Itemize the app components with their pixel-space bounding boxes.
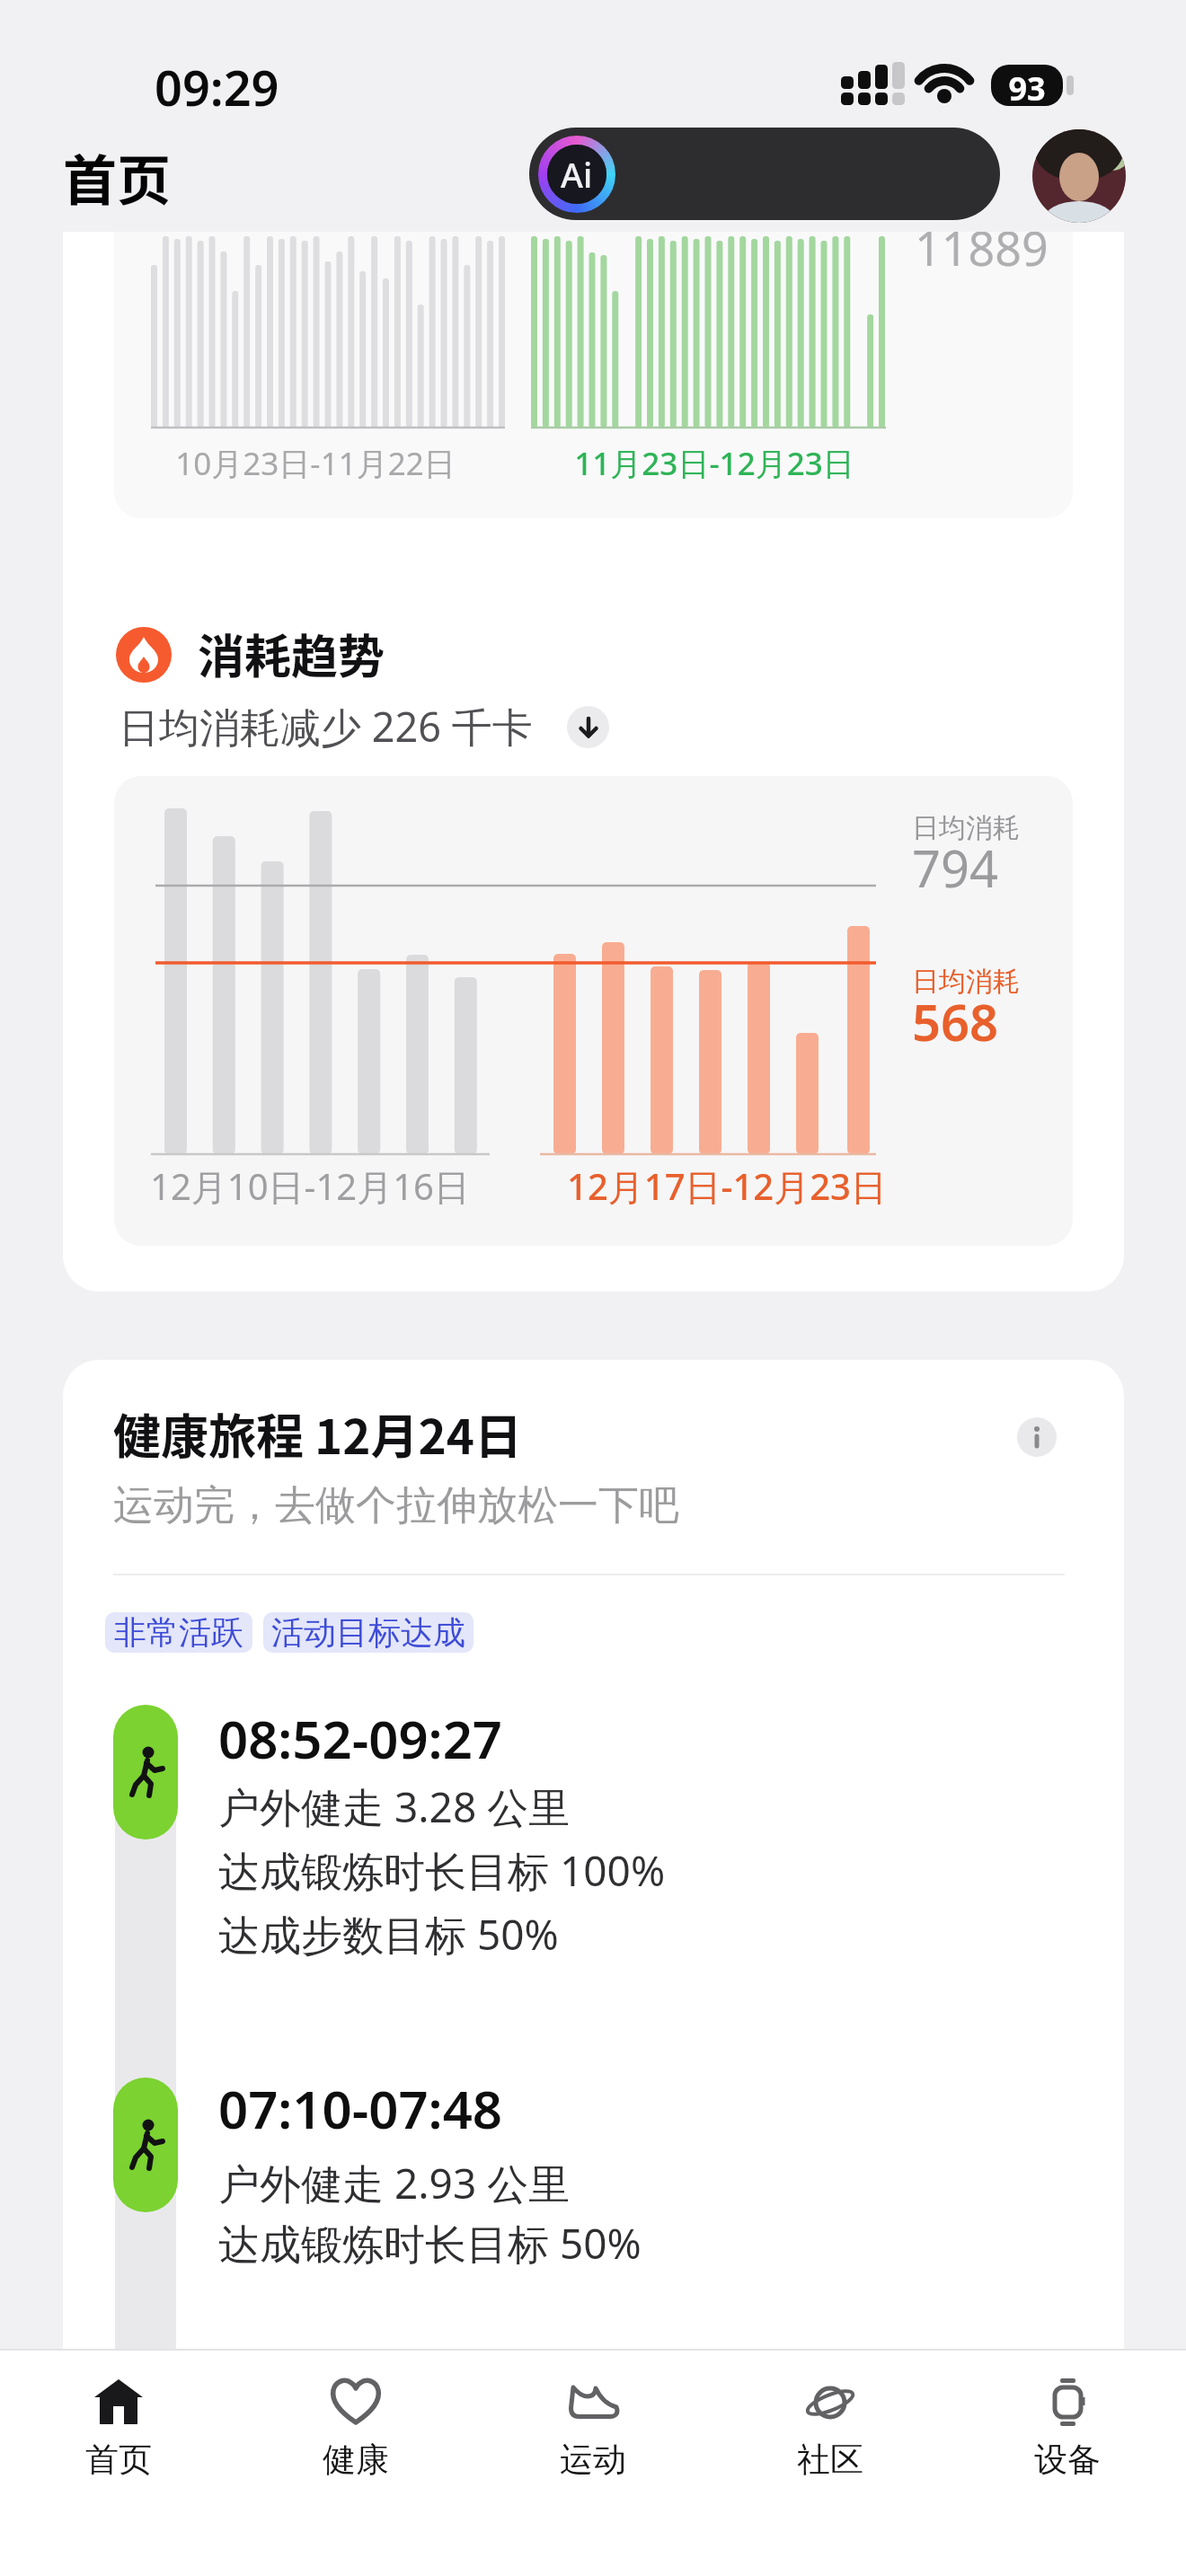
button[interactable] (1017, 1417, 1057, 1457)
button[interactable] (63, 1360, 1124, 2349)
staticText: 日均消耗减少 226 千卡 (119, 699, 533, 754)
staticText: 运动完，去做个拉伸放松一下吧 (113, 1480, 679, 1531)
staticText: 08:52-09:27 (218, 1703, 502, 1774)
button[interactable] (113, 1705, 178, 1839)
button[interactable] (113, 2078, 178, 2212)
staticText: 达成锻炼时长目标 50% (218, 2215, 642, 2272)
staticText: 07:10-07:48 (218, 2073, 502, 2144)
staticText: 11月23日-12月23日 (539, 442, 889, 485)
staticText: 794 (912, 834, 999, 902)
staticText: 户外健走 3.28 公里 (218, 1778, 571, 1835)
staticText: 非常活跃 (114, 1612, 243, 1653)
staticText: 首页 (85, 2439, 152, 2481)
staticText: 日均消耗 (912, 811, 1020, 845)
staticText: 户外健走 2.93 公里 (218, 2155, 571, 2211)
staticText: Ai (561, 151, 593, 198)
button[interactable]: 健康 (237, 2349, 474, 2576)
staticText: 12月17日-12月23日 (552, 1161, 902, 1211)
staticText: 568 (912, 987, 999, 1055)
button[interactable] (567, 706, 609, 748)
staticText: 11889 (915, 216, 1049, 279)
staticText: 12月10日-12月16日 (144, 1161, 476, 1211)
staticText: 93 (991, 66, 1063, 110)
button[interactable]: 社区 (712, 2349, 949, 2576)
staticText: 10月23日-11月22日 (149, 442, 482, 485)
button[interactable]: 设备 (949, 2349, 1186, 2576)
staticText: 达成步数目标 50% (218, 1906, 559, 1963)
staticText: 达成锻炼时长目标 100% (218, 1842, 666, 1899)
staticText: 设备 (1034, 2439, 1101, 2481)
button[interactable]: 非常活跃 (105, 1612, 252, 1653)
staticText: 活动目标达成 (271, 1612, 465, 1653)
button[interactable]: 活动目标达成 (263, 1612, 474, 1653)
button[interactable]: Ai (529, 128, 1000, 220)
staticText: 首页 (63, 137, 171, 216)
staticText: 09:29 (155, 54, 279, 120)
button[interactable]: 首页 (0, 2349, 237, 2576)
staticText: 日均消耗 (912, 965, 1020, 999)
staticText: 健康旅程 12月24日 (113, 1399, 523, 1469)
button[interactable]: 运动 (474, 2349, 712, 2576)
staticText: 社区 (797, 2439, 863, 2481)
staticText: 健康 (323, 2439, 389, 2481)
button[interactable] (1032, 129, 1126, 223)
button[interactable] (63, 232, 1124, 1292)
staticText: 运动 (560, 2439, 626, 2481)
staticText: 消耗趋势 (198, 620, 385, 687)
